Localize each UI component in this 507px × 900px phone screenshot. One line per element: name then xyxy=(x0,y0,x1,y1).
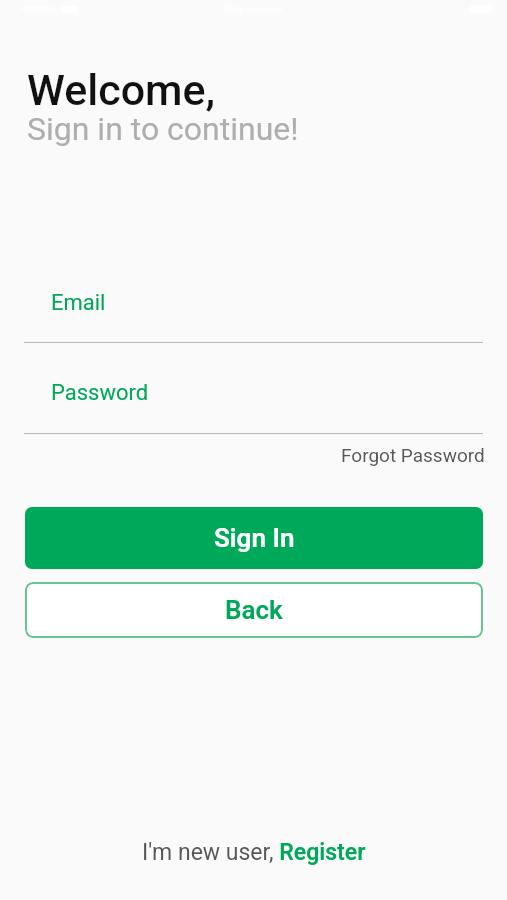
staticText: Back xyxy=(225,595,283,625)
staticText: Password xyxy=(51,380,149,406)
button[interactable]: Password input field xyxy=(24,369,483,434)
staticText: Forgot Password xyxy=(341,444,485,466)
staticText: Welcome, xyxy=(27,65,216,115)
button[interactable]: I'm new user, Register xyxy=(130,833,378,872)
staticText: Email xyxy=(51,290,106,316)
button[interactable]: Sign In xyxy=(25,507,483,569)
staticText: Sign In xyxy=(214,523,295,553)
button[interactable]: Email input field xyxy=(24,278,483,343)
button[interactable]: Forgot Password xyxy=(331,438,495,472)
staticText: Sign in to continue! xyxy=(27,110,299,148)
button[interactable]: Back xyxy=(25,582,483,638)
staticText: I'm new user, Register xyxy=(142,839,366,866)
